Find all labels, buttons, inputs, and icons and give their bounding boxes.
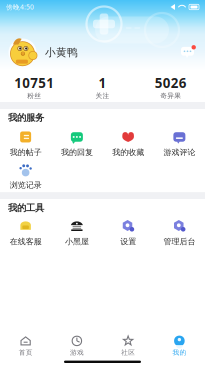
staticText: 在线客服: [10, 237, 42, 246]
staticText: 浏览记录: [10, 180, 42, 190]
button[interactable]: 消息: [178, 44, 197, 60]
button[interactable]: 我的回复: [51, 130, 102, 157]
staticText: 1: [98, 74, 106, 92]
button[interactable]: 管理后台: [154, 220, 205, 246]
staticText: 社区: [121, 348, 135, 357]
button[interactable]: 我的帖子: [0, 130, 51, 157]
button[interactable]: 首页: [0, 335, 51, 357]
button[interactable]: 5026: [137, 74, 205, 100]
staticText: 我的工具: [8, 202, 44, 214]
button[interactable]: 小黑屋: [51, 220, 102, 246]
button[interactable]: 我的收藏: [102, 130, 154, 157]
staticText: 管理后台: [163, 237, 195, 246]
button[interactable]: 社区: [102, 335, 154, 357]
button[interactable]: 设置: [102, 220, 154, 246]
staticText: 小黑屋: [65, 237, 89, 246]
staticText: 傍晚4:50: [6, 3, 34, 11]
staticText: 奇异果: [160, 92, 181, 100]
staticText: 10751: [14, 74, 54, 92]
staticText: 我的回复: [61, 147, 93, 157]
button[interactable]: 10751: [0, 74, 68, 100]
button[interactable]: 1: [68, 74, 137, 100]
button[interactable]: 游戏: [51, 335, 102, 357]
button[interactable]: 浏览记录: [0, 163, 51, 190]
button[interactable]: 我的: [154, 335, 205, 357]
staticText: 我的服务: [8, 112, 44, 123]
staticText: 我的帖子: [10, 147, 42, 157]
staticText: 首页: [19, 348, 33, 357]
staticText: 关注: [95, 92, 109, 100]
staticText: 设置: [120, 237, 136, 246]
staticText: 我的收藏: [112, 147, 144, 157]
button[interactable]: 游戏评论: [154, 130, 205, 157]
button[interactable]: 在线客服: [0, 220, 51, 246]
staticText: 游戏评论: [163, 147, 195, 157]
staticText: 小黄鸭: [45, 46, 78, 59]
staticText: 粉丝: [27, 92, 41, 100]
staticText: 游戏: [70, 348, 84, 357]
staticText: 我的: [172, 348, 186, 357]
staticText: 5026: [155, 74, 187, 92]
